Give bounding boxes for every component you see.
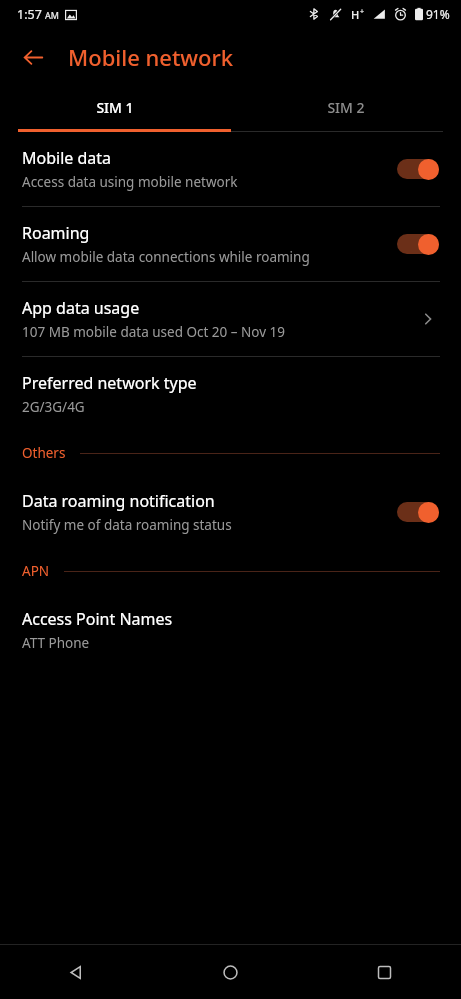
staticText: + xyxy=(360,7,365,17)
button[interactable]: SIM 2 xyxy=(230,85,461,129)
button[interactable]: Mobile data xyxy=(0,132,461,206)
staticText: 91% xyxy=(426,6,450,22)
staticText: Mobile network xyxy=(68,42,234,72)
staticText: App data usage xyxy=(22,297,140,319)
button[interactable]: App data usage xyxy=(0,282,461,356)
button[interactable]: Toggle xyxy=(397,497,443,527)
button[interactable]: Back xyxy=(12,36,54,78)
button[interactable]: SIM 1 xyxy=(0,85,230,129)
staticText: ATT Phone xyxy=(22,634,90,652)
button[interactable]: Toggle xyxy=(397,154,443,184)
staticText: Roaming xyxy=(22,222,90,244)
staticText: 1:57 xyxy=(17,6,42,23)
button[interactable]: Data roaming notification xyxy=(0,475,461,549)
button[interactable]: Home xyxy=(153,945,307,999)
staticText: APN xyxy=(22,562,50,580)
staticText: SIM 1 xyxy=(96,98,134,117)
button[interactable]: Preferred network type xyxy=(0,357,461,431)
staticText: Notify me of data roaming status xyxy=(22,516,232,534)
staticText: Access data using mobile network xyxy=(22,173,238,191)
staticText: Access Point Names xyxy=(22,608,173,630)
staticText: AM xyxy=(45,9,59,21)
button[interactable]: Roaming xyxy=(0,207,461,281)
staticText: Others xyxy=(22,444,66,462)
staticText: 107 MB mobile data used Oct 20 – Nov 19 xyxy=(22,323,286,341)
staticText: Data roaming notification xyxy=(22,490,215,512)
button[interactable]: Back xyxy=(0,945,153,999)
button[interactable]: Toggle xyxy=(397,229,443,259)
staticText: Allow mobile data connections while roam… xyxy=(22,248,310,266)
staticText: Mobile data xyxy=(22,147,112,169)
staticText: SIM 2 xyxy=(327,98,365,117)
button[interactable]: Recent apps xyxy=(307,945,461,999)
button[interactable]: Access Point Names xyxy=(0,593,461,667)
staticText: Preferred network type xyxy=(22,372,197,394)
staticText: 2G/3G/4G xyxy=(22,398,85,416)
staticText: H xyxy=(351,7,360,22)
